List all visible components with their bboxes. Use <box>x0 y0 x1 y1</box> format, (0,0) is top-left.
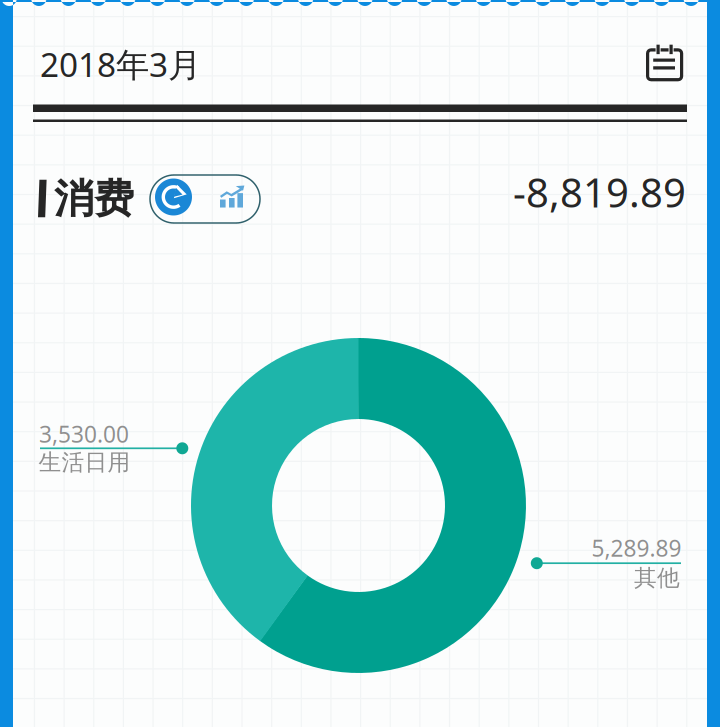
staticText: 消费 <box>54 174 134 223</box>
staticText: 其他 <box>634 564 680 592</box>
staticText: 生活日用 <box>38 449 130 476</box>
button[interactable]: Records <box>641 36 688 86</box>
staticText: 2018年3月 <box>40 42 201 86</box>
staticText: 5,289.89 <box>591 533 681 563</box>
staticText: -8,819.89 <box>513 165 686 218</box>
staticText: 3,530.00 <box>39 419 129 449</box>
button[interactable]: Chart type <box>150 175 260 223</box>
